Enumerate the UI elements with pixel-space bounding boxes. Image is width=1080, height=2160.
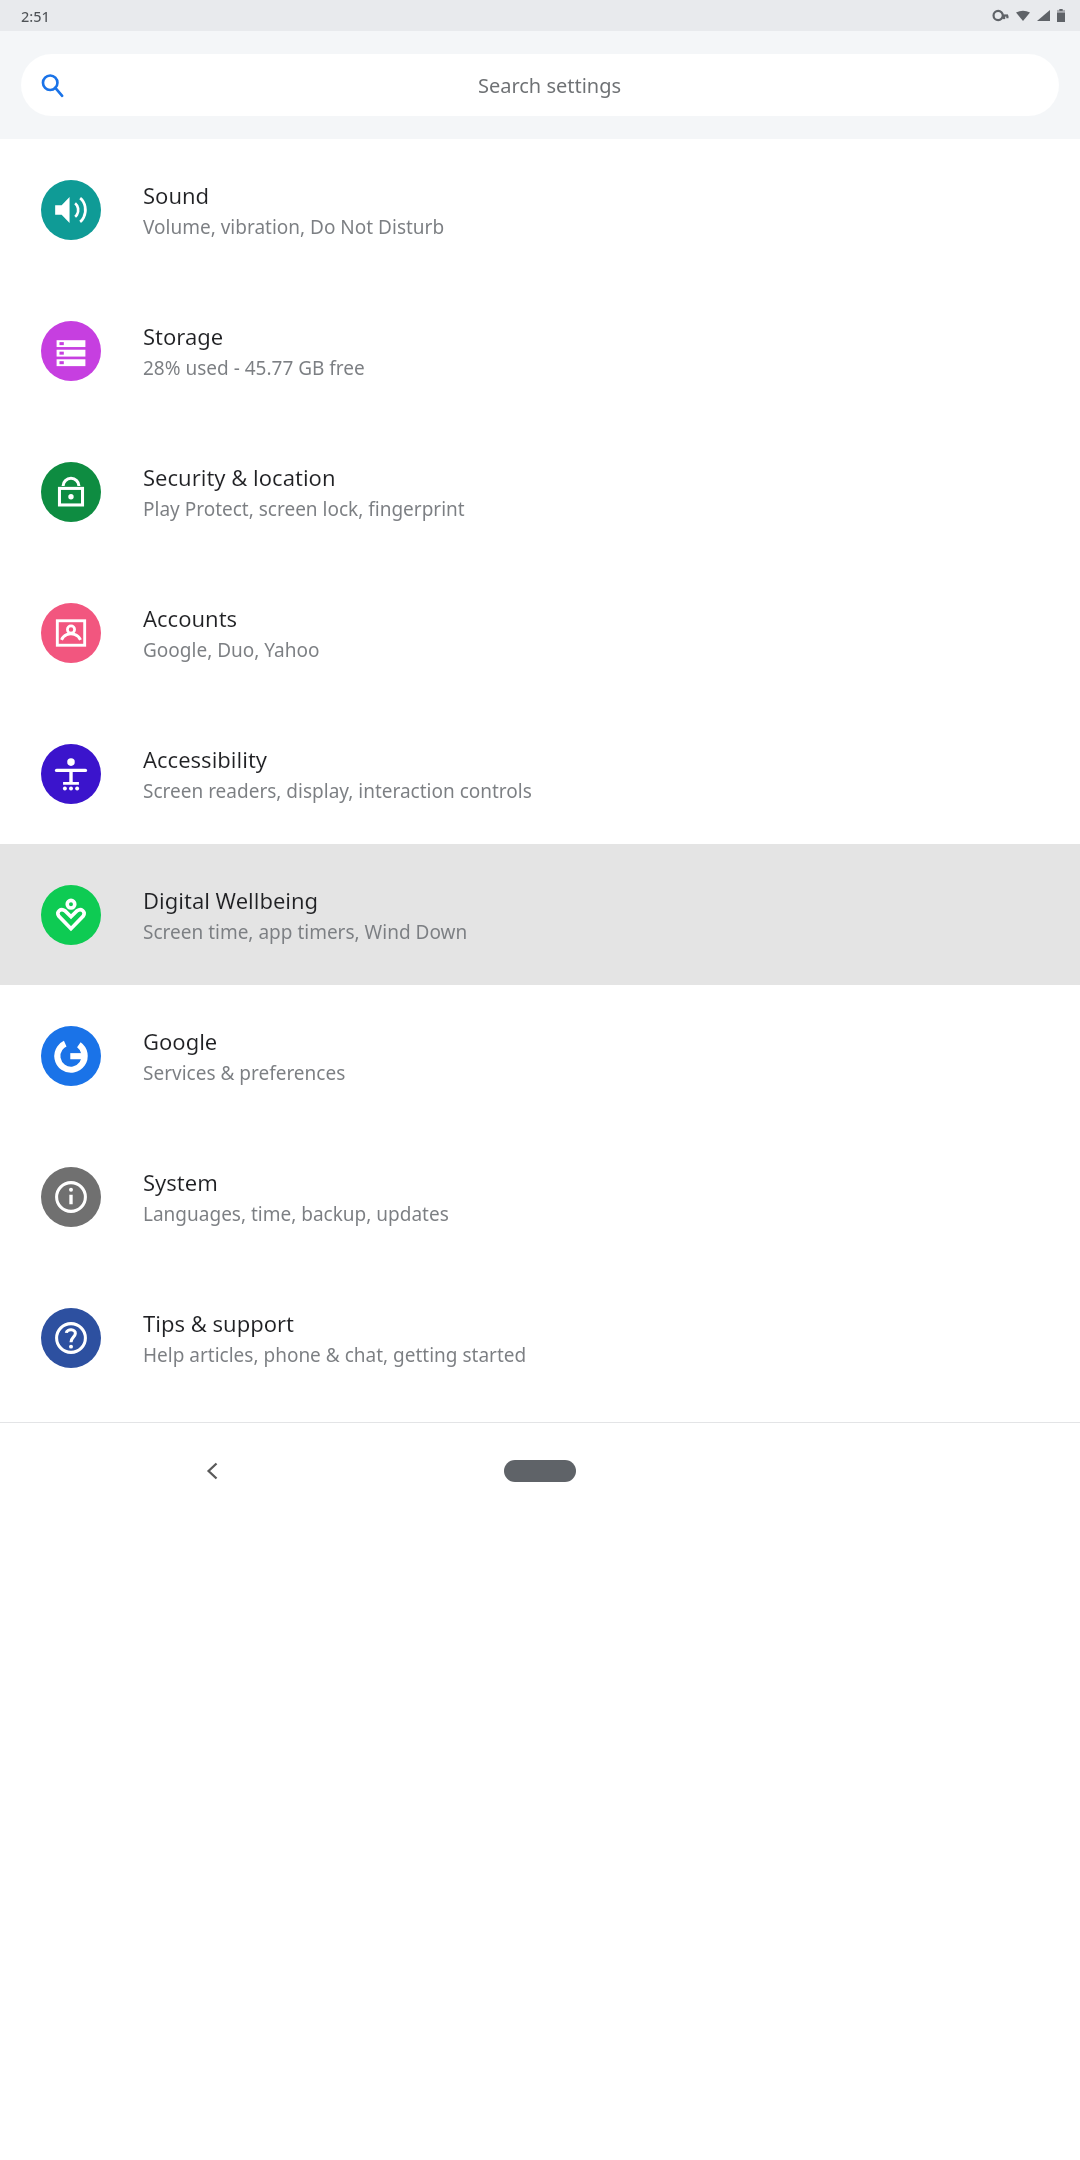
staticText: Accounts	[143, 603, 238, 633]
button[interactable]: Security & location	[0, 421, 1080, 562]
button[interactable]: Accounts	[0, 562, 1080, 703]
button[interactable]: Tips & support	[0, 1267, 1080, 1408]
staticText: System	[143, 1167, 218, 1197]
staticText: Languages, time, backup, updates	[143, 1201, 449, 1227]
button[interactable]: Search settings	[21, 54, 1059, 116]
staticText: Play Protect, screen lock, fingerprint	[143, 496, 465, 522]
staticText: Accessibility	[143, 744, 268, 774]
button[interactable]: Accessibility	[0, 703, 1080, 844]
button[interactable]: Digital Wellbeing	[0, 844, 1080, 985]
button[interactable]: Google	[0, 985, 1080, 1126]
button[interactable]: Storage	[0, 280, 1080, 421]
staticText: Services & preferences	[143, 1060, 346, 1086]
staticText: Sound	[143, 180, 210, 210]
staticText: Volume, vibration, Do Not Disturb	[143, 214, 445, 240]
staticText: Security & location	[143, 462, 336, 492]
staticText: Google, Duo, Yahoo	[143, 637, 320, 663]
button[interactable]: Home	[501, 1455, 579, 1487]
staticText: Digital Wellbeing	[143, 885, 319, 915]
button[interactable]: System	[0, 1126, 1080, 1267]
staticText: 2:51	[21, 6, 50, 26]
staticText: Search settings	[52, 72, 1047, 99]
button[interactable]: Sound	[0, 139, 1080, 280]
staticText: Storage	[143, 321, 224, 351]
staticText: Google	[143, 1026, 218, 1056]
staticText: 28% used - 45.77 GB free	[143, 355, 365, 381]
staticText: Screen time, app timers, Wind Down	[143, 919, 468, 945]
staticText: Tips & support	[143, 1308, 295, 1338]
button[interactable]: Back	[185, 1443, 241, 1499]
staticText: Screen readers, display, interaction con…	[143, 778, 532, 804]
staticText: Help articles, phone & chat, getting sta…	[143, 1342, 527, 1368]
